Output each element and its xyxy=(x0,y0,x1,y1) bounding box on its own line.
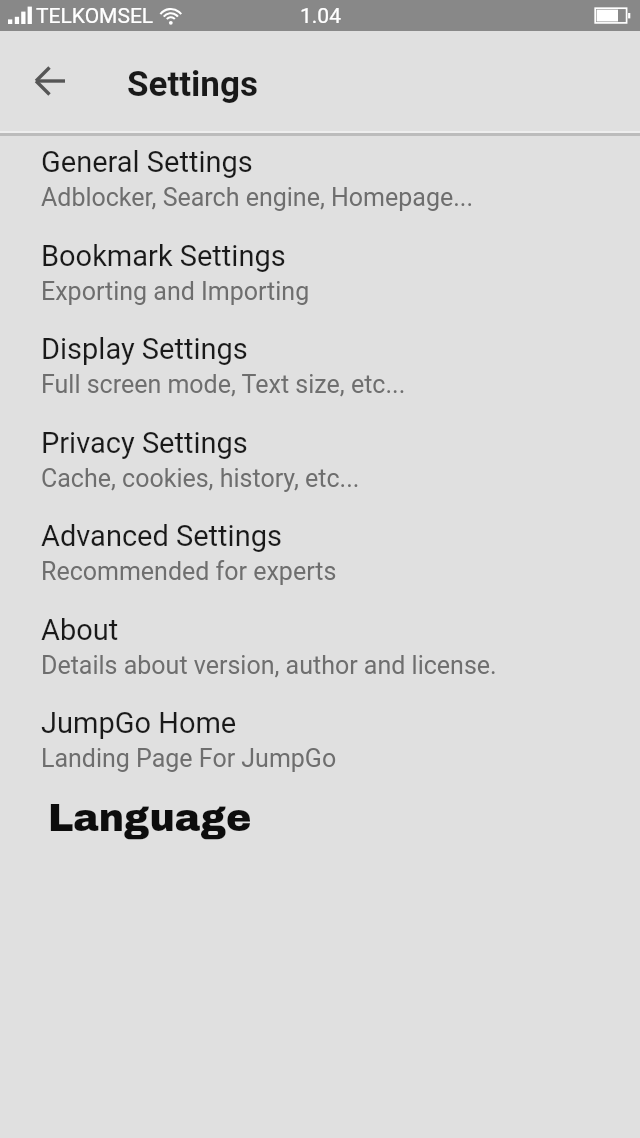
staticText: Privacy Settings xyxy=(41,426,248,460)
staticText: Exporting and Importing xyxy=(41,276,310,306)
staticText: Recommended for experts xyxy=(41,556,337,586)
staticText: Settings xyxy=(127,64,258,105)
button[interactable]: Advanced Settings xyxy=(0,519,640,587)
button[interactable]: JumpGo Home xyxy=(0,706,640,774)
button[interactable]: About xyxy=(0,613,640,681)
button[interactable]: Bookmark Settings xyxy=(0,239,640,307)
button[interactable]: Privacy Settings xyxy=(0,426,640,494)
staticText: JumpGo Home xyxy=(41,706,237,740)
staticText: Details about version, author and licens… xyxy=(41,650,497,680)
staticText: Landing Page For JumpGo xyxy=(41,743,337,773)
staticText: About xyxy=(41,613,119,647)
staticText: Cache, cookies, history, etc... xyxy=(41,463,360,493)
staticText: General Settings xyxy=(41,145,253,179)
button[interactable]: General Settings xyxy=(0,145,640,213)
staticText: Language xyxy=(48,798,252,839)
staticText: Advanced Settings xyxy=(41,519,282,553)
staticText: 1.04 xyxy=(300,4,341,29)
staticText: Display Settings xyxy=(41,332,248,366)
staticText: Bookmark Settings xyxy=(41,239,286,273)
button[interactable]: Display Settings xyxy=(0,332,640,400)
staticText: Adblocker, Search engine, Homepage... xyxy=(41,182,473,212)
staticText: Full screen mode, Text size, etc... xyxy=(41,369,406,399)
button[interactable]: Back xyxy=(20,50,82,112)
staticText: TELKOMSEL xyxy=(36,4,154,29)
button[interactable]: Language xyxy=(0,794,640,850)
